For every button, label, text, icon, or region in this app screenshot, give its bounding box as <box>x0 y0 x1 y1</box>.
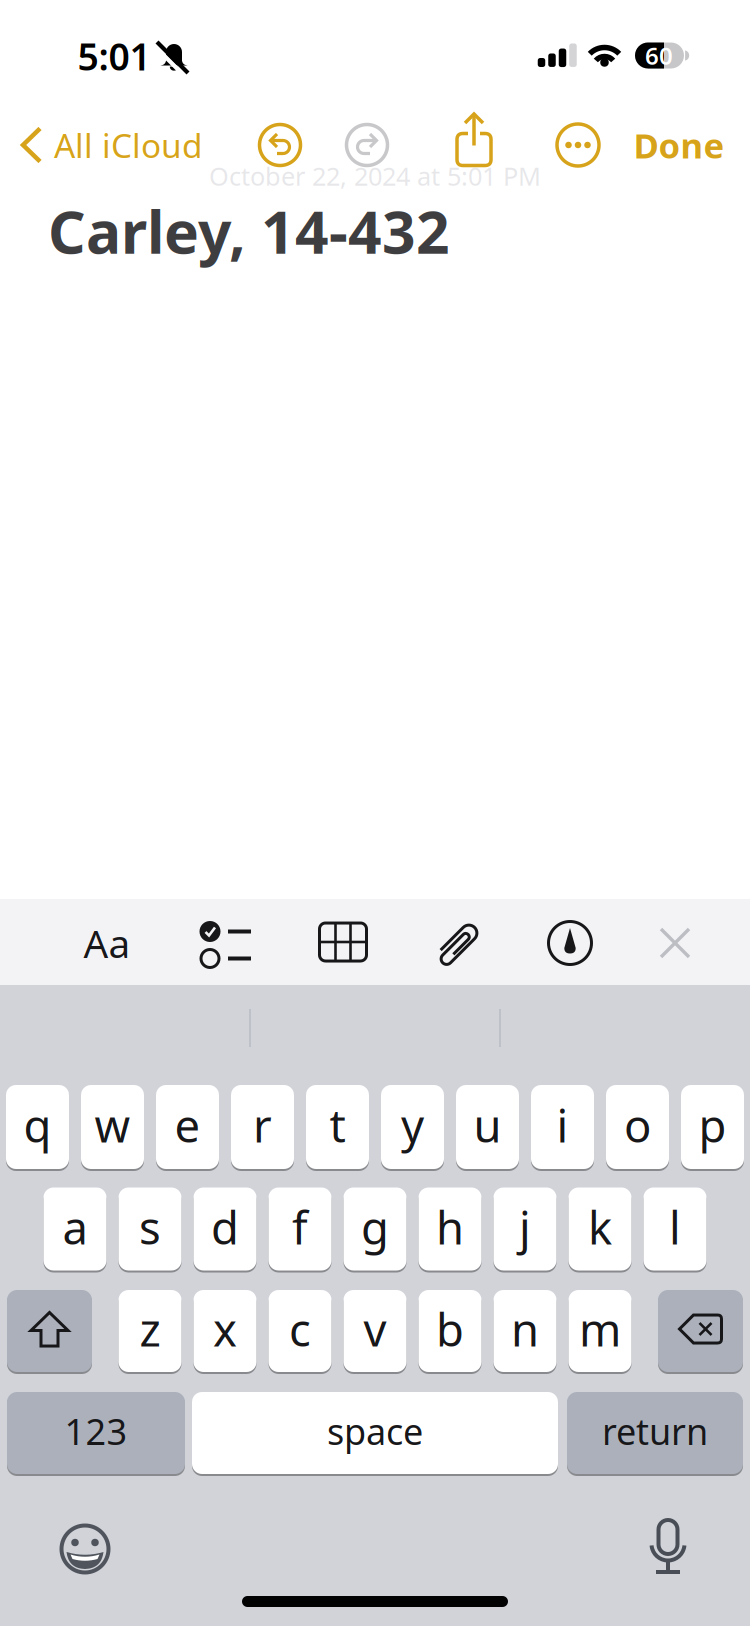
button[interactable]: q <box>6 1083 69 1171</box>
button[interactable]: Share <box>455 112 493 167</box>
button[interactable]: y <box>381 1083 444 1171</box>
staticText: x <box>213 1299 237 1359</box>
button[interactable]: Format <box>67 908 147 978</box>
button[interactable]: t <box>306 1083 369 1171</box>
button[interactable]: e <box>156 1083 219 1171</box>
staticText: 123 <box>64 1407 127 1455</box>
button[interactable]: r <box>231 1083 294 1171</box>
staticText: z <box>139 1299 160 1359</box>
staticText: d <box>211 1197 239 1257</box>
button[interactable]: 123 <box>7 1390 185 1476</box>
staticText: p <box>698 1095 726 1155</box>
button[interactable]: Shift <box>7 1288 92 1374</box>
staticText: g <box>361 1197 389 1257</box>
button[interactable]: x <box>193 1288 256 1374</box>
button[interactable]: n <box>493 1288 556 1374</box>
staticText: l <box>669 1197 681 1257</box>
button[interactable]: g <box>343 1185 406 1272</box>
button[interactable]: m <box>568 1288 631 1374</box>
button[interactable]: l <box>643 1185 706 1272</box>
button[interactable]: Table <box>319 923 366 961</box>
button[interactable]: a <box>43 1185 106 1272</box>
staticText: r <box>253 1095 272 1155</box>
staticText: k <box>588 1197 612 1257</box>
staticText: v <box>363 1299 386 1359</box>
staticText: e <box>174 1095 200 1155</box>
button[interactable]: h <box>418 1185 481 1272</box>
staticText: space <box>327 1407 423 1455</box>
button[interactable]: Dictate <box>649 1520 687 1574</box>
button[interactable]: Dismiss keyboard <box>661 929 689 957</box>
button[interactable]: s <box>118 1185 181 1272</box>
button[interactable]: j <box>493 1185 556 1272</box>
button[interactable]: Attach <box>434 918 484 968</box>
staticText: f <box>292 1197 308 1257</box>
staticText: u <box>473 1095 501 1155</box>
staticText: y <box>401 1095 424 1155</box>
staticText: m <box>579 1299 621 1359</box>
staticText: Done <box>633 122 724 168</box>
staticText: h <box>436 1197 464 1257</box>
button[interactable]: return <box>567 1390 743 1476</box>
staticText: s <box>139 1197 161 1257</box>
button[interactable]: space <box>192 1390 558 1476</box>
staticText: 5:01 <box>77 31 150 81</box>
button[interactable]: z <box>118 1288 181 1374</box>
staticText: w <box>94 1095 130 1155</box>
staticText: Carley, 14-432 <box>48 192 450 270</box>
staticText: t <box>329 1095 345 1155</box>
button[interactable]: o <box>606 1083 669 1171</box>
button[interactable]: Back <box>20 121 250 169</box>
staticText: j <box>519 1197 531 1257</box>
button[interactable]: b <box>418 1288 481 1374</box>
button[interactable]: c <box>268 1288 331 1374</box>
staticText: October 22, 2024 at 5:01 PM <box>209 159 541 193</box>
button[interactable]: Redo <box>345 123 389 167</box>
staticText: n <box>511 1299 539 1359</box>
staticText: a <box>62 1197 87 1257</box>
button[interactable]: v <box>343 1288 406 1374</box>
button[interactable]: d <box>193 1185 256 1272</box>
button[interactable]: Delete <box>658 1288 743 1374</box>
button[interactable]: f <box>268 1185 331 1272</box>
button[interactable]: w <box>81 1083 144 1171</box>
button[interactable]: More <box>556 123 600 167</box>
button[interactable]: p <box>681 1083 744 1171</box>
button[interactable]: k <box>568 1185 631 1272</box>
staticText: Aa <box>83 917 130 969</box>
button[interactable]: Emoji <box>59 1523 110 1574</box>
staticText: i <box>556 1095 568 1155</box>
button[interactable]: u <box>456 1083 519 1171</box>
staticText: c <box>289 1299 311 1359</box>
staticText: All iCloud <box>54 123 203 167</box>
button[interactable]: Undo <box>258 123 302 167</box>
button[interactable]: Markup <box>548 921 591 964</box>
staticText: q <box>23 1095 51 1155</box>
button[interactable]: i <box>531 1083 594 1171</box>
staticText: o <box>624 1095 651 1155</box>
button[interactable]: Checklist <box>199 920 253 969</box>
staticText: return <box>602 1407 708 1455</box>
button[interactable]: Done <box>633 123 724 167</box>
staticText: b <box>436 1299 464 1359</box>
staticText: 60 <box>645 40 673 71</box>
